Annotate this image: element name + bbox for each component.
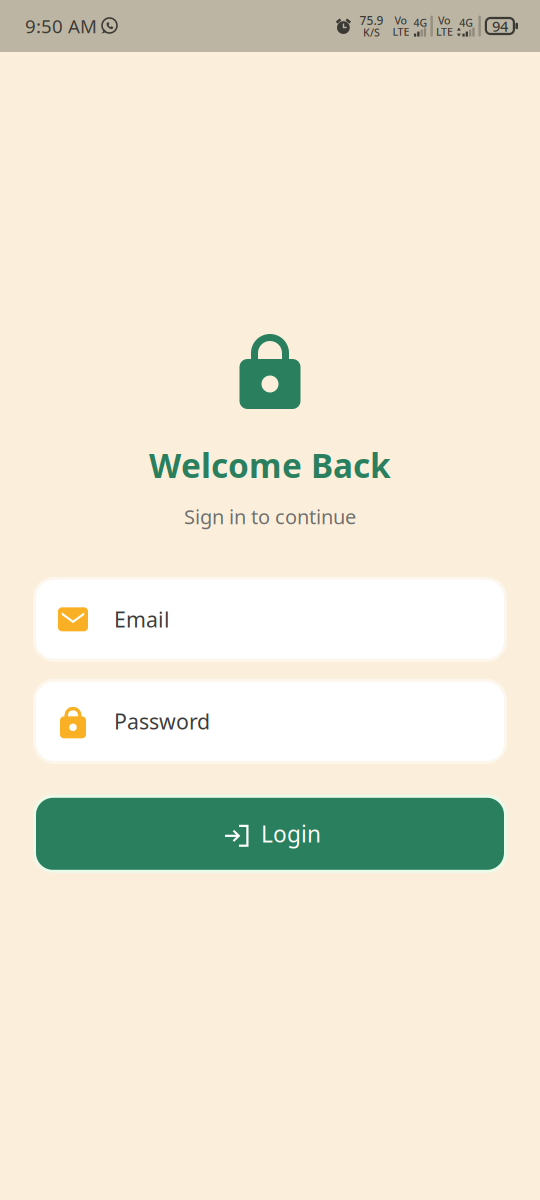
button[interactable]: Login bbox=[36, 798, 504, 870]
staticText: Email bbox=[114, 605, 170, 633]
staticText: 4G bbox=[413, 15, 427, 30]
staticText: 94 bbox=[492, 16, 508, 36]
staticText: 4G bbox=[459, 15, 473, 30]
staticText: 9:50 AM bbox=[25, 14, 97, 38]
staticText: Login bbox=[261, 819, 321, 849]
staticText: 75.9 bbox=[359, 12, 383, 28]
staticText: Password bbox=[114, 707, 210, 735]
staticText: Welcome Back bbox=[149, 443, 391, 487]
staticText: Vo bbox=[438, 13, 451, 27]
staticText: Sign in to continue bbox=[184, 503, 356, 530]
button[interactable]: Email bbox=[36, 580, 504, 659]
staticText: LTE bbox=[392, 24, 409, 39]
staticText: LTE bbox=[436, 24, 453, 39]
staticText: Vo bbox=[394, 13, 407, 27]
button[interactable]: Password bbox=[36, 682, 504, 761]
staticText: K/S bbox=[363, 25, 380, 40]
